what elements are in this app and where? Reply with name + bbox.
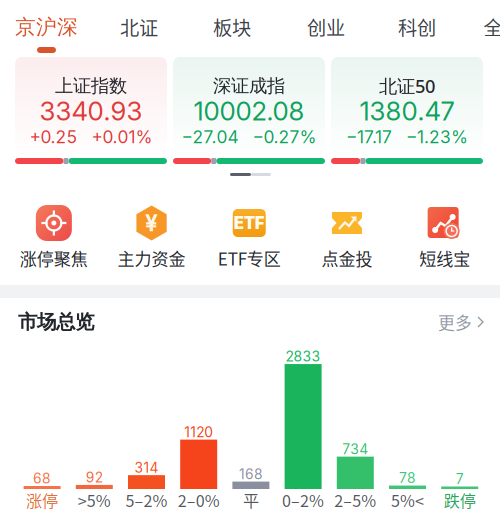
button[interactable]: 板块 (186, 0, 278, 57)
button[interactable]: ETF (200, 205, 298, 271)
staticText: 跌停 (444, 488, 476, 511)
staticText: 深证成指 (213, 74, 285, 97)
button[interactable]: 点金投 (298, 205, 396, 271)
button[interactable]: 北证 (93, 0, 185, 57)
button[interactable]: 深证成指 (173, 57, 325, 154)
staticText: 涨停 (26, 488, 58, 511)
staticText: 全 (483, 13, 500, 41)
staticText: 5%< (391, 488, 424, 511)
staticText: 734 (342, 441, 368, 457)
staticText: 92 (86, 469, 103, 486)
staticText: 涨停聚焦 (20, 246, 88, 270)
staticText: 314 (134, 459, 158, 476)
staticText: 168 (239, 466, 263, 482)
staticText: 平 (243, 488, 259, 511)
button[interactable]: ¥ (103, 205, 200, 271)
staticText: 主力资金 (118, 246, 186, 270)
staticText: 2833 (286, 348, 321, 365)
staticText: 7 (456, 471, 464, 487)
staticText: ETF (234, 213, 265, 233)
button[interactable]: 京沪深 (0, 0, 92, 57)
staticText: 更多 (438, 310, 472, 334)
staticText: 2–5% (334, 488, 376, 511)
staticText: −27.04 (181, 126, 238, 147)
staticText: 1380.47 (359, 95, 454, 127)
staticText: 10002.08 (193, 95, 304, 127)
button[interactable]: 更多 (438, 310, 485, 334)
staticText: >5% (78, 488, 111, 511)
staticText: 科创 (398, 13, 436, 41)
staticText: −17.17 (346, 126, 392, 147)
staticText: −1.23% (406, 126, 468, 147)
staticText: 点金投 (321, 246, 372, 270)
button[interactable]: 涨停聚焦 (5, 205, 103, 271)
staticText: 5–2% (125, 488, 167, 511)
staticText: 1120 (184, 424, 213, 440)
staticText: 3340.93 (39, 95, 142, 127)
staticText: +0.25 (29, 126, 77, 147)
staticText: 78 (399, 470, 416, 486)
staticText: 短线宝 (419, 246, 470, 270)
staticText: 京沪深 (15, 14, 78, 40)
staticText: ETF专区 (218, 246, 281, 270)
staticText: ¥ (145, 209, 158, 237)
button[interactable]: 上证指数 (15, 57, 167, 154)
button[interactable]: 科创 (371, 0, 463, 57)
staticText: +0.01% (91, 126, 152, 147)
staticText: 市场总览 (18, 310, 94, 334)
staticText: 68 (33, 470, 51, 487)
staticText: 创业 (307, 13, 345, 41)
staticText: −0.27% (252, 126, 316, 147)
staticText: 0–2% (282, 488, 324, 511)
button[interactable]: 短线宝 (396, 205, 493, 271)
button[interactable]: 创业 (280, 0, 372, 57)
button[interactable]: 北证50 (331, 57, 483, 154)
staticText: 2–0% (178, 488, 220, 511)
button[interactable]: 全 (447, 0, 500, 57)
staticText: 北证 (120, 13, 158, 41)
staticText: 板块 (213, 13, 251, 41)
staticText: 北证50 (379, 74, 435, 98)
staticText: 上证指数 (55, 74, 127, 97)
